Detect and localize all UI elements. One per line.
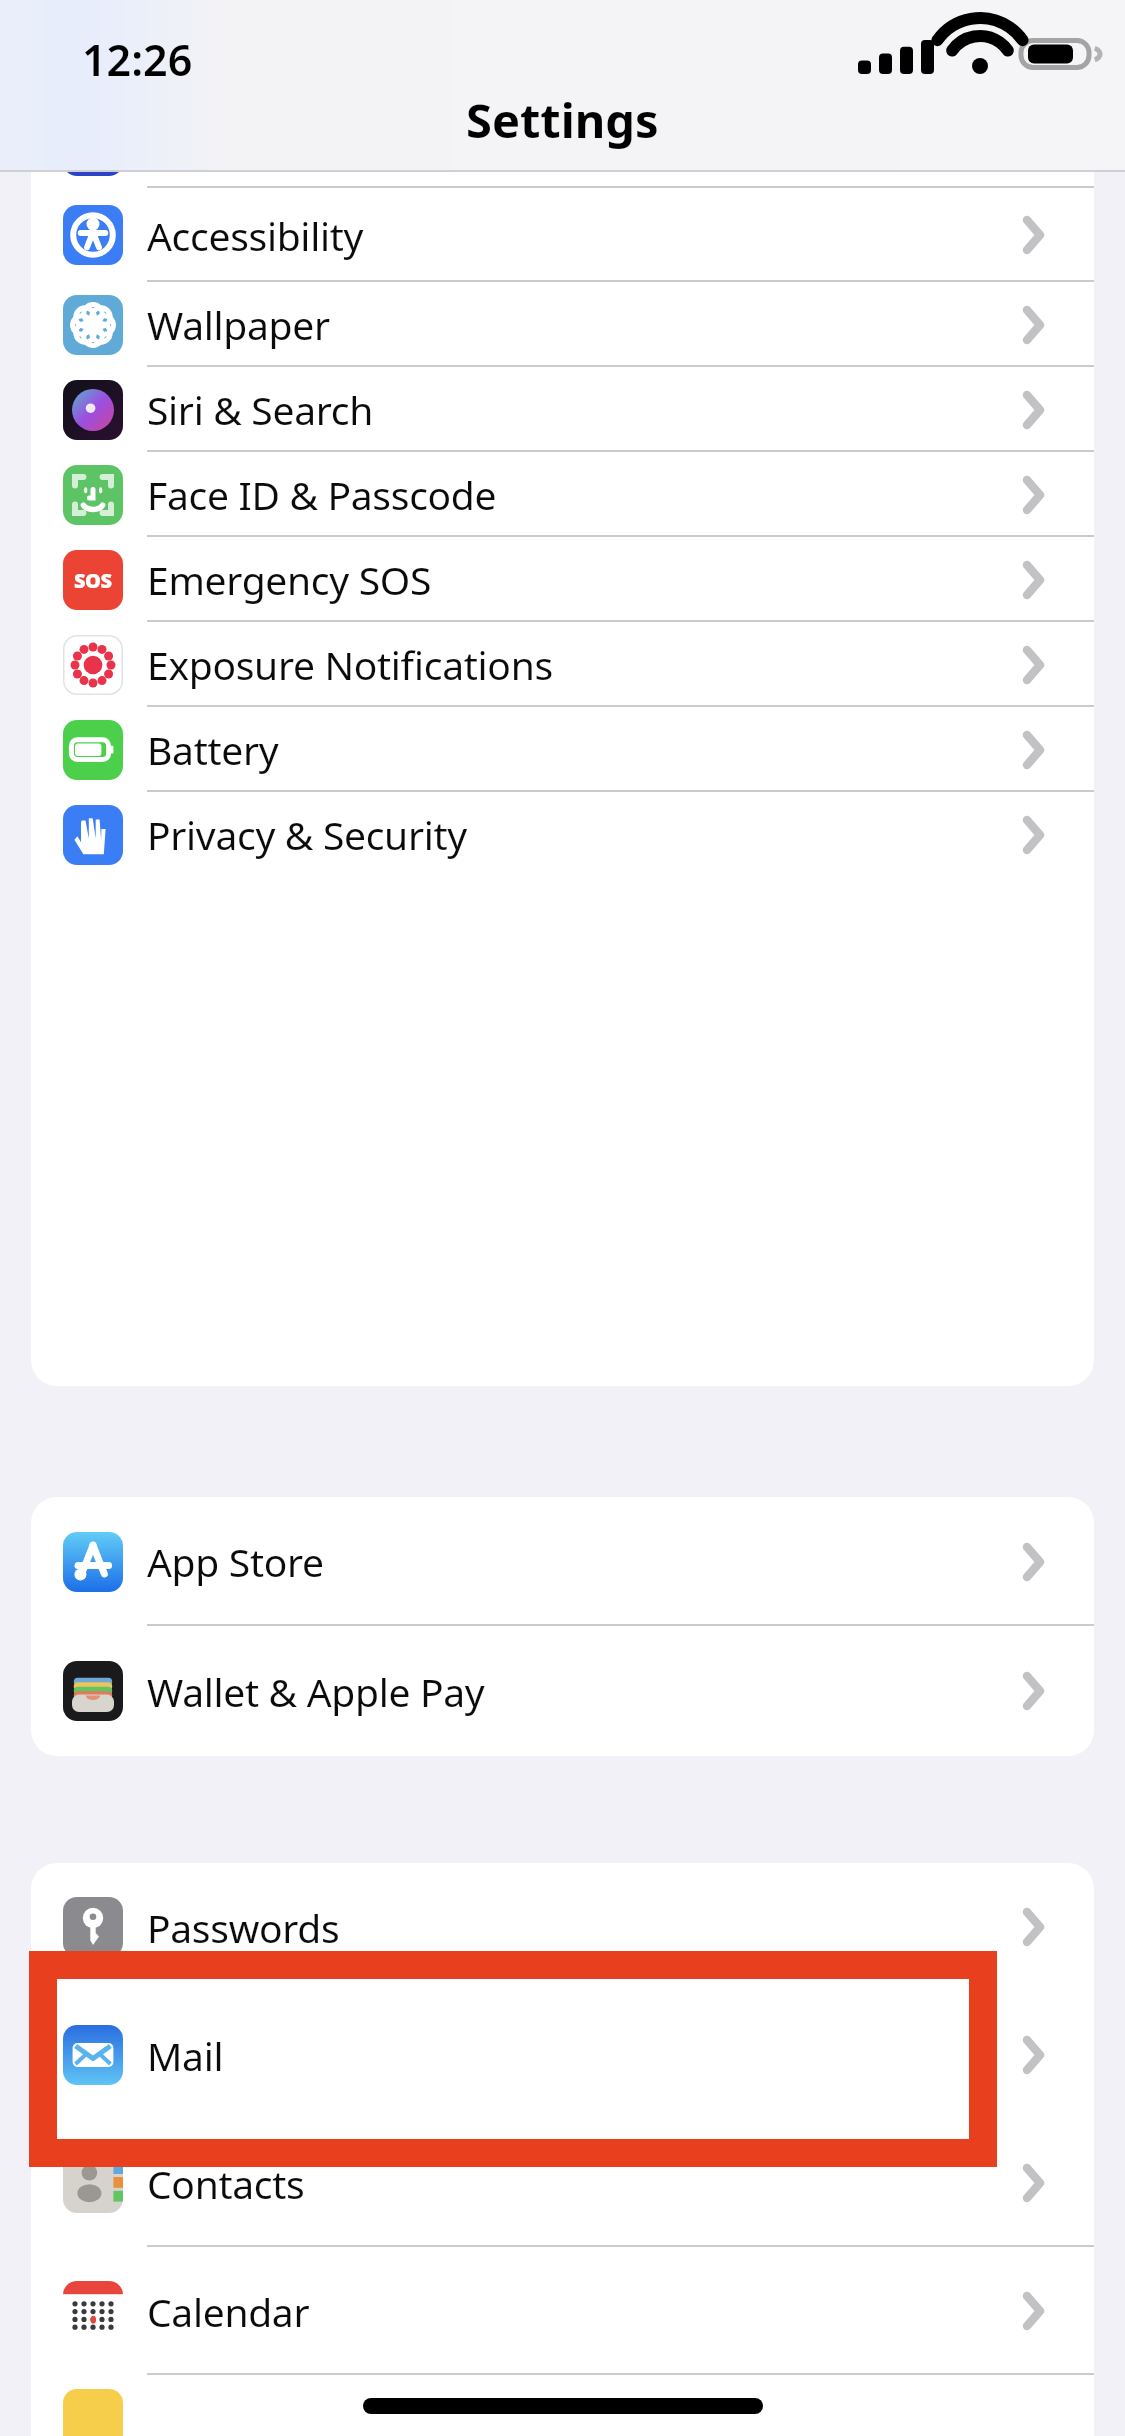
staticText: Exposure Notifications bbox=[147, 638, 553, 691]
button[interactable]: Contacts bbox=[31, 2119, 1094, 2247]
button[interactable]: Mail bbox=[31, 1991, 1094, 2119]
staticText: Wallet & Apple Pay bbox=[147, 1665, 485, 1718]
button[interactable]: Calendar bbox=[31, 2247, 1094, 2375]
staticText: Contacts bbox=[147, 2157, 305, 2210]
staticText: Wallpaper bbox=[147, 298, 330, 351]
button[interactable]: Face ID & Passcode bbox=[31, 452, 1094, 537]
staticText: Mail bbox=[147, 2029, 224, 2082]
button[interactable] bbox=[31, 2375, 1094, 2436]
staticText: Settings bbox=[466, 88, 659, 152]
button[interactable]: General bbox=[31, 103, 1094, 188]
staticText: Privacy & Security bbox=[147, 808, 467, 861]
button[interactable]: App Store bbox=[31, 1497, 1094, 1626]
staticText: Accessibility bbox=[147, 209, 364, 262]
button[interactable]: Battery bbox=[31, 707, 1094, 792]
staticText: Battery bbox=[147, 723, 279, 776]
staticText: Emergency SOS bbox=[147, 553, 432, 606]
staticText: Siri & Search bbox=[147, 383, 374, 436]
button[interactable]: Siri & Search bbox=[31, 367, 1094, 452]
button[interactable]: Accessibility bbox=[31, 188, 1094, 282]
button[interactable]: SOS bbox=[31, 537, 1094, 622]
button[interactable]: Privacy & Security bbox=[31, 792, 1094, 877]
button[interactable]: Passwords bbox=[31, 1863, 1094, 1991]
staticText: Face ID & Passcode bbox=[147, 468, 497, 521]
staticText: Passwords bbox=[147, 1901, 340, 1954]
staticText: 12:26 bbox=[82, 30, 193, 89]
staticText: App Store bbox=[147, 1535, 324, 1588]
staticText: SOS bbox=[74, 567, 112, 594]
staticText: Calendar bbox=[147, 2285, 310, 2338]
button[interactable]: Wallpaper bbox=[31, 282, 1094, 367]
button[interactable]: Wallet & Apple Pay bbox=[31, 1626, 1094, 1756]
staticText: General bbox=[147, 119, 289, 172]
button[interactable]: Exposure Notifications bbox=[31, 622, 1094, 707]
